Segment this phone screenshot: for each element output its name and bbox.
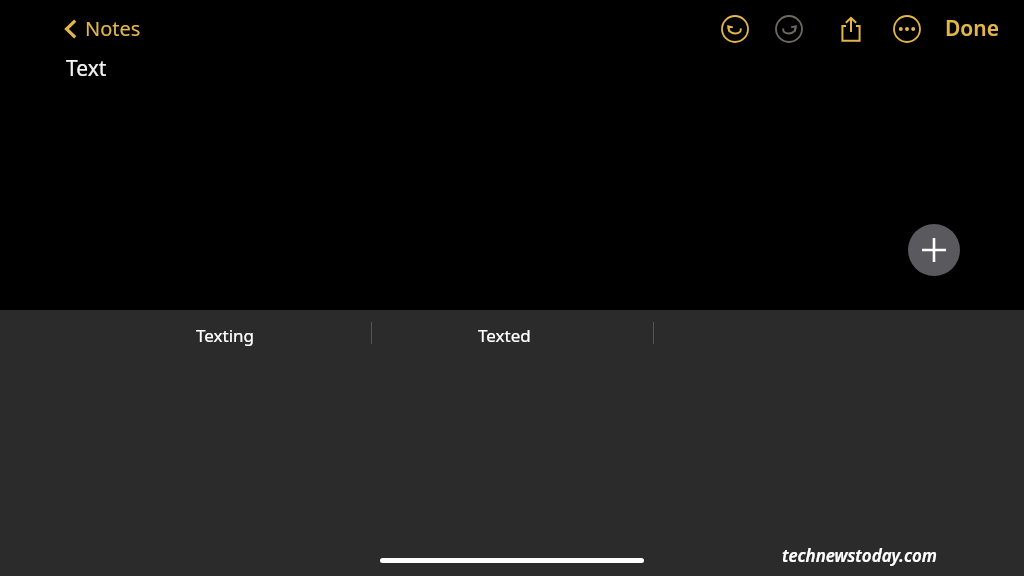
staticText: Done	[945, 14, 1000, 43]
staticText: Text	[66, 54, 107, 83]
button[interactable]: Share	[831, 9, 871, 49]
button[interactable]: Texted	[478, 324, 531, 347]
button[interactable]: Add attachment	[908, 224, 960, 276]
staticText: Notes	[85, 15, 141, 42]
button[interactable]: Redo	[769, 9, 809, 49]
button[interactable]: Done	[939, 8, 1006, 49]
button[interactable]: More options	[887, 9, 927, 49]
button[interactable]: Texting	[196, 324, 254, 347]
button[interactable]: Undo	[715, 9, 755, 49]
staticText: technewstoday.com	[782, 544, 938, 567]
button[interactable]: Notes	[60, 12, 145, 45]
